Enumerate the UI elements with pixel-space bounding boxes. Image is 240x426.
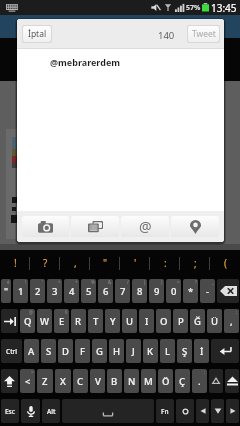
staticText: 7 <box>120 285 126 298</box>
button[interactable]: J <box>126 339 141 363</box>
button[interactable]: . <box>192 369 207 393</box>
staticText: % <box>91 279 95 285</box>
button[interactable]: 5 <box>81 279 96 303</box>
button[interactable]: Mention <box>121 216 169 237</box>
button[interactable]: " <box>90 250 120 276</box>
staticText: ; <box>194 256 197 270</box>
button[interactable]: Ü <box>207 309 222 333</box>
button[interactable]: Camera <box>22 216 69 237</box>
staticText: 9 <box>154 285 160 298</box>
button[interactable]: mic <box>21 399 40 423</box>
staticText: " <box>4 285 9 298</box>
staticText: Ctrl <box>6 347 18 356</box>
button[interactable]: H <box>109 339 124 363</box>
button[interactable]: Tweet <box>188 26 219 42</box>
button[interactable]: I <box>139 309 154 333</box>
button[interactable]: down <box>211 399 224 423</box>
staticText: : <box>164 256 167 270</box>
button[interactable]: right <box>226 399 239 423</box>
staticText: ^ <box>58 279 61 285</box>
button[interactable]: Ö <box>158 369 173 393</box>
button[interactable]: X <box>55 369 71 393</box>
button[interactable]: ' <box>120 250 150 276</box>
button[interactable]: Esc <box>1 399 19 423</box>
button[interactable]: R <box>71 309 86 333</box>
staticText: O <box>160 315 168 328</box>
button[interactable]: " <box>1 279 11 303</box>
button[interactable]: : <box>150 250 180 276</box>
button[interactable]: K <box>143 339 158 363</box>
button[interactable]: G <box>92 339 107 363</box>
button[interactable]: 3 <box>47 279 62 303</box>
button[interactable]: ( <box>210 250 240 276</box>
button[interactable]: V <box>90 369 105 393</box>
button[interactable]: Ctrl <box>1 339 22 363</box>
button[interactable]: < <box>20 369 35 393</box>
button[interactable]: P <box>173 309 188 333</box>
staticText: M <box>144 375 153 388</box>
button[interactable]: W <box>37 309 52 333</box>
button[interactable]: Alt <box>42 399 60 423</box>
staticText: < <box>25 375 31 388</box>
button[interactable]: Gallery <box>71 216 119 237</box>
button[interactable]: up <box>209 369 223 393</box>
button[interactable]: enter <box>211 339 239 363</box>
button[interactable]: 7 <box>115 279 130 303</box>
button[interactable]: 6 <box>98 279 113 303</box>
button[interactable]: 0 <box>166 279 181 303</box>
button[interactable]: M <box>141 369 156 393</box>
staticText: L <box>165 345 171 358</box>
button[interactable]: , <box>224 309 239 333</box>
button[interactable]: N <box>124 369 139 393</box>
button[interactable]: , <box>60 250 90 276</box>
button[interactable]: L <box>160 339 175 363</box>
staticText: 6 <box>103 285 109 298</box>
button[interactable]: * <box>183 279 198 303</box>
button[interactable]: F <box>75 339 90 363</box>
button[interactable]: B <box>107 369 122 393</box>
button[interactable]: İptal <box>23 26 51 42</box>
button[interactable]: Ç <box>175 369 190 393</box>
button[interactable]: ; <box>180 250 210 276</box>
button[interactable]: Location <box>171 216 219 237</box>
button[interactable]: ! <box>0 250 30 276</box>
button[interactable]: S <box>41 339 56 363</box>
button[interactable]: 1 <box>13 279 28 303</box>
button[interactable]: D <box>58 339 73 363</box>
button[interactable]: Ğ <box>190 309 205 333</box>
staticText: ! <box>14 256 17 270</box>
button[interactable]: 2 <box>30 279 45 303</box>
button[interactable]: - <box>200 279 215 303</box>
button[interactable]: caps <box>225 369 239 393</box>
button[interactable]: space <box>62 399 154 423</box>
staticText: ( <box>144 279 146 285</box>
button[interactable]: İ <box>194 339 209 363</box>
staticText: _ <box>212 279 214 285</box>
button[interactable]: U <box>122 309 137 333</box>
staticText: @mebrarerdem <box>50 56 121 68</box>
staticText: Ş <box>182 345 188 358</box>
button[interactable]: T <box>88 309 103 333</box>
button[interactable]: tab <box>1 309 18 333</box>
button[interactable]: left <box>196 399 209 423</box>
button[interactable]: O <box>156 309 171 333</box>
button[interactable]: A <box>24 339 39 363</box>
staticText: Z <box>42 375 48 388</box>
button[interactable]: Fn <box>156 399 174 423</box>
button[interactable]: 4 <box>64 279 79 303</box>
button[interactable]: ? <box>30 250 60 276</box>
button[interactable]: bksp <box>217 279 239 303</box>
button[interactable]: shift <box>1 369 18 393</box>
button[interactable]: circle <box>176 399 194 423</box>
button[interactable]: 8 <box>132 279 147 303</box>
button[interactable]: Ş <box>177 339 192 363</box>
staticText: , <box>74 256 77 270</box>
button[interactable]: Y <box>105 309 120 333</box>
button[interactable]: C <box>73 369 88 393</box>
button[interactable]: E <box>54 309 69 333</box>
staticText: Alt <box>47 407 56 416</box>
button[interactable]: Z <box>37 369 53 393</box>
button[interactable]: Q <box>20 309 35 333</box>
staticText: , <box>230 315 233 328</box>
button[interactable]: 9 <box>149 279 164 303</box>
